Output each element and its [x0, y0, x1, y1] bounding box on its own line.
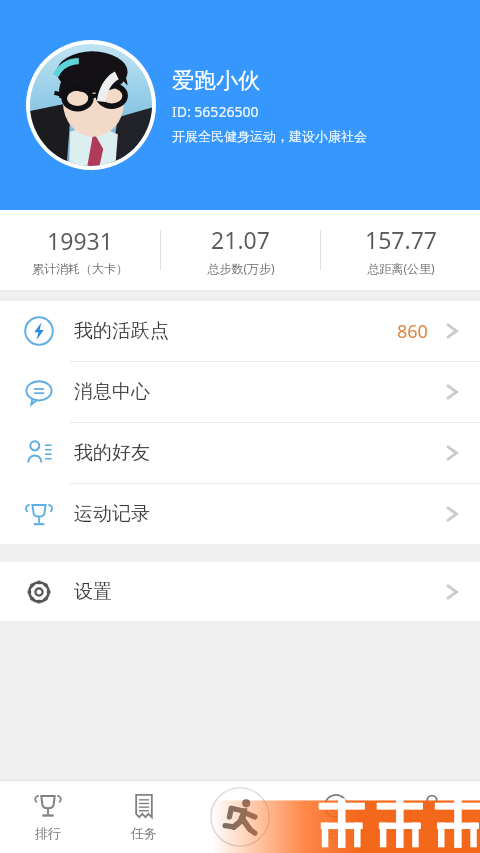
button[interactable]: 任务	[96, 780, 192, 853]
staticText: 消息中心	[74, 380, 150, 404]
staticText: 860	[397, 319, 428, 344]
staticText: 21.07	[211, 224, 270, 255]
button[interactable]: Avatar	[26, 40, 156, 170]
button[interactable]: 21.07	[161, 224, 320, 276]
button[interactable]: 157.77	[321, 224, 480, 276]
staticText: 我的好友	[74, 441, 150, 465]
button[interactable]: 19931	[0, 225, 160, 276]
staticText: 157.77	[365, 224, 437, 255]
staticText: 设置	[74, 580, 112, 604]
staticText: 我的活跃点	[74, 319, 169, 343]
staticText: 运动记录	[74, 502, 150, 526]
button[interactable]: 运动记录	[0, 484, 480, 544]
staticText: 总距离(公里)	[367, 260, 435, 276]
button[interactable]: 我的好友	[0, 423, 480, 484]
staticText: 开展全民健身运动，建设小康社会	[172, 128, 367, 144]
staticText: 我的	[419, 825, 445, 841]
staticText: 发现	[323, 825, 349, 841]
staticText: 19931	[47, 225, 113, 256]
staticText: 爱跑小伙	[172, 67, 260, 95]
button[interactable]: 设置	[0, 562, 480, 621]
button[interactable]: Start run	[192, 780, 288, 853]
staticText: 总步数(万步)	[207, 260, 275, 276]
button[interactable]: 我的活跃点	[0, 301, 480, 362]
staticText: 排行	[35, 825, 61, 841]
staticText: 任务	[131, 825, 157, 841]
staticText: ID: 56526500	[172, 102, 259, 121]
button[interactable]: 发现	[288, 780, 384, 853]
staticText: 累计消耗（大卡）	[32, 261, 128, 276]
button[interactable]: 消息中心	[0, 362, 480, 423]
button[interactable]: 我的	[384, 780, 480, 853]
button[interactable]: 排行	[0, 780, 96, 853]
